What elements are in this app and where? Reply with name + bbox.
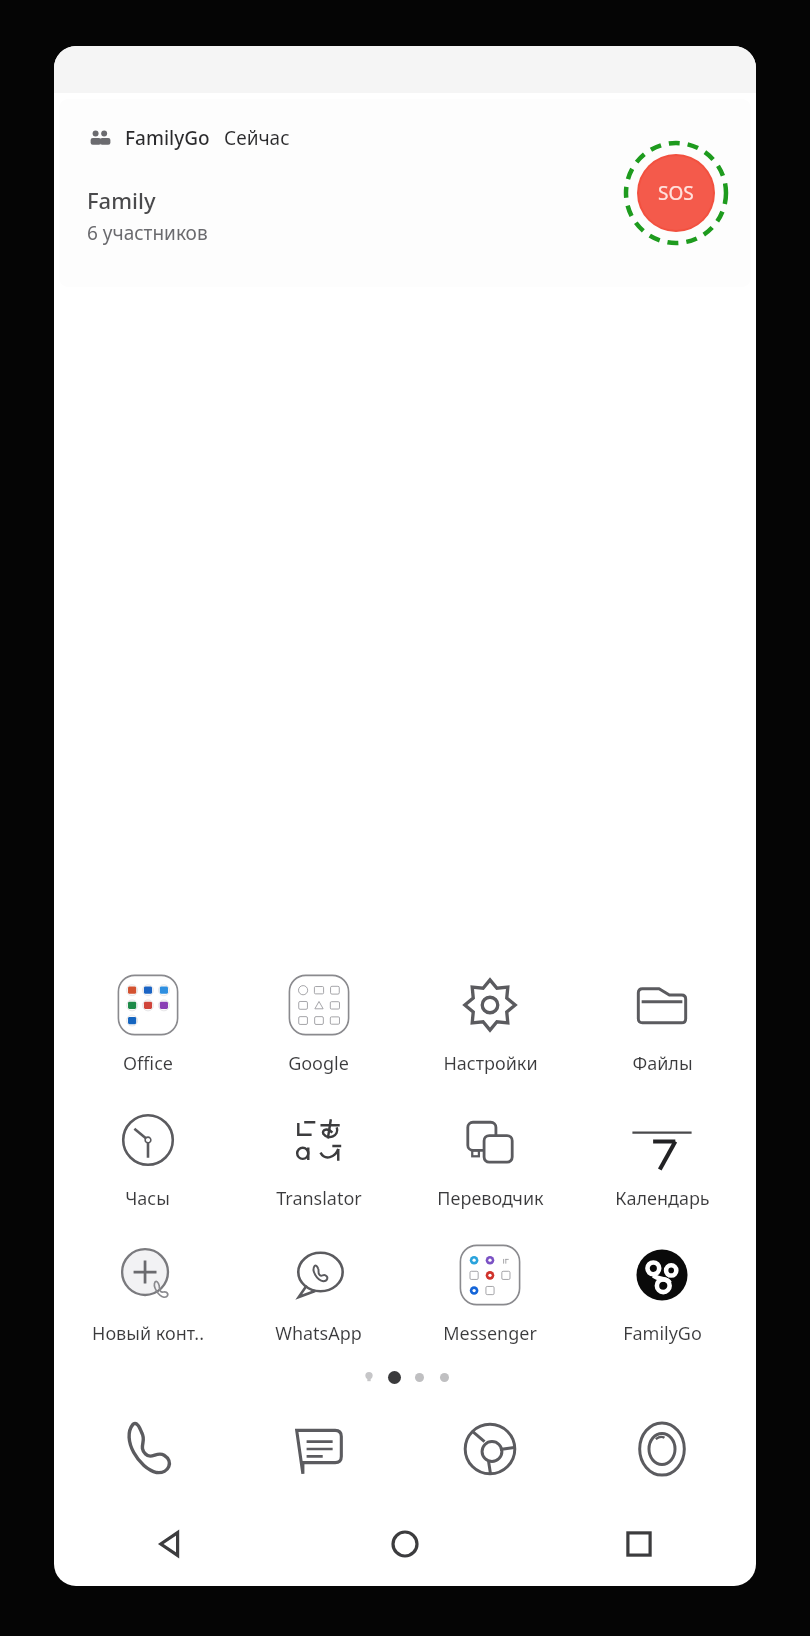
staticText: 6 участников [87,220,208,246]
button[interactable]: Настройки [404,968,576,1076]
staticText: Translator [276,1186,362,1211]
staticText: Календарь [615,1186,710,1211]
button[interactable]: Office [62,968,233,1076]
button[interactable]: Phone [62,1412,233,1486]
button[interactable]: Camera [576,1412,748,1486]
button[interactable]: Переводчик [404,1103,576,1211]
button[interactable]: FamilyGo [576,1238,748,1346]
staticText: Google [288,1051,349,1076]
staticText: Messenger [443,1321,537,1346]
button[interactable]: Часы [62,1103,233,1211]
button[interactable]: Файлы [576,968,748,1076]
staticText: Часы [125,1186,170,1211]
button[interactable]: Back [54,1516,288,1572]
button[interactable]: Messages [233,1412,404,1486]
button[interactable]: WhatsApp [233,1238,404,1346]
staticText: SOS [658,180,694,206]
button[interactable]: Google [233,968,404,1076]
button[interactable]: Chrome [404,1412,576,1486]
button[interactable]: Новый конт.. [62,1238,233,1346]
staticText: Family [87,185,156,215]
staticText: FamilyGo [125,125,210,151]
staticText: Сейчас [224,125,290,151]
staticText: Новый конт.. [92,1321,204,1346]
button[interactable]: Home [288,1516,522,1572]
button[interactable]: Календарь [576,1103,748,1211]
staticText: Настройки [443,1051,538,1076]
staticText: Office [123,1051,173,1076]
button[interactable]: Translator [233,1103,404,1211]
staticText: Переводчик [437,1186,544,1211]
staticText: WhatsApp [275,1321,362,1346]
button[interactable]: FamilyGo [59,99,751,287]
button[interactable]: SOS [623,140,729,246]
staticText: Файлы [632,1051,693,1076]
button[interactable]: Recents [522,1516,756,1572]
button[interactable]: Messenger [404,1238,576,1346]
staticText: FamilyGo [623,1321,702,1346]
